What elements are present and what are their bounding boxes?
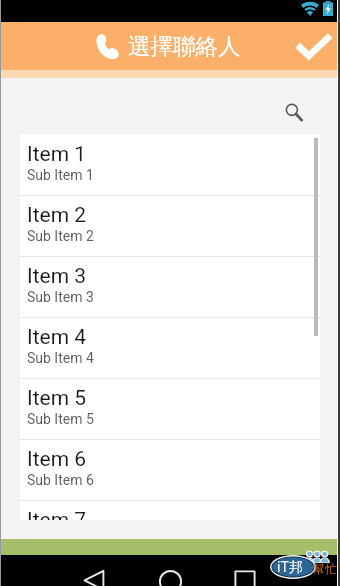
staticText: Item 1 bbox=[27, 142, 87, 167]
staticText: Sub Item 2 bbox=[27, 228, 94, 244]
staticText: Item 5 bbox=[27, 386, 87, 411]
staticText: Item 6 bbox=[27, 447, 87, 472]
button[interactable]: Home bbox=[150, 561, 190, 586]
staticText: Item 4 bbox=[27, 325, 87, 350]
staticText: Item 3 bbox=[27, 264, 87, 289]
staticText: Sub Item 3 bbox=[27, 289, 94, 305]
staticText: 幫忙 bbox=[313, 561, 337, 576]
button[interactable]: Item 2 bbox=[20, 196, 320, 256]
staticText: 選擇聯絡人 bbox=[128, 32, 241, 60]
button[interactable]: Item 5 bbox=[20, 379, 320, 439]
button[interactable]: Search bbox=[275, 93, 313, 131]
button[interactable]: Confirm bbox=[292, 24, 336, 68]
button[interactable]: Item 6 bbox=[20, 440, 320, 500]
button[interactable]: Item 4 bbox=[20, 318, 320, 378]
staticText: Sub Item 4 bbox=[27, 350, 94, 366]
staticText: Item 7 bbox=[27, 508, 87, 520]
staticText: Sub Item 1 bbox=[27, 167, 94, 183]
staticText: iT邦 bbox=[277, 559, 303, 577]
button[interactable]: Item 1 bbox=[20, 135, 320, 195]
button[interactable]: Item 7 bbox=[20, 501, 320, 520]
staticText: Sub Item 5 bbox=[27, 411, 94, 427]
button[interactable]: Back bbox=[74, 560, 114, 586]
staticText: Sub Item 6 bbox=[27, 472, 94, 488]
button[interactable]: Recents bbox=[225, 561, 265, 586]
button[interactable]: Item 3 bbox=[20, 257, 320, 317]
staticText: Item 2 bbox=[27, 203, 87, 228]
